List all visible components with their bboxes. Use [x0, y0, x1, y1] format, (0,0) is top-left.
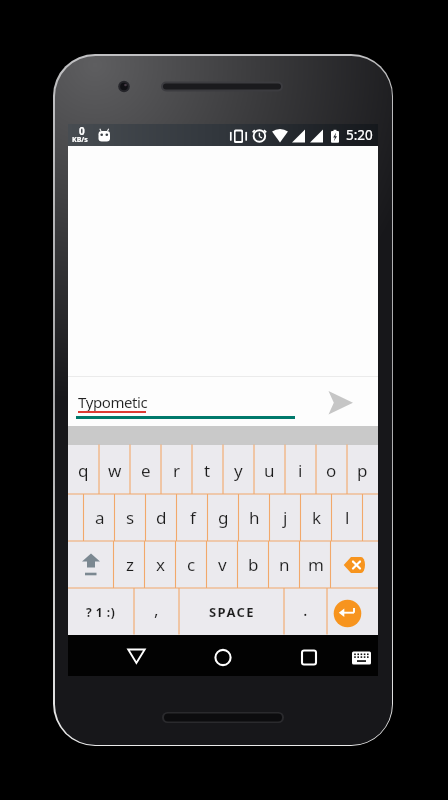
button[interactable]: p: [347, 445, 378, 495]
button[interactable]: r: [161, 445, 192, 495]
staticText: c: [187, 553, 196, 576]
button[interactable]: y: [223, 445, 254, 495]
button[interactable]: b: [238, 541, 269, 588]
staticText: 0: [79, 124, 85, 136]
button[interactable]: [293, 642, 325, 673]
button[interactable]: g: [208, 494, 239, 541]
staticText: ? 1 :): [86, 604, 116, 620]
staticText: o: [326, 459, 337, 482]
button[interactable]: u: [254, 445, 285, 495]
button[interactable]: i: [285, 445, 316, 495]
button[interactable]: n: [269, 541, 300, 588]
button[interactable]: a: [84, 494, 115, 541]
staticText: SPACE: [209, 603, 255, 621]
button[interactable]: [331, 541, 379, 588]
button[interactable]: [347, 642, 376, 673]
staticText: e: [141, 459, 151, 482]
button[interactable]: d: [146, 494, 177, 541]
staticText: v: [218, 553, 227, 576]
staticText: b: [248, 553, 259, 576]
button[interactable]: [124, 642, 156, 673]
button[interactable]: ? 1 :): [68, 588, 134, 635]
staticText: g: [218, 506, 229, 529]
staticText: y: [234, 459, 243, 482]
button[interactable]: .: [284, 588, 327, 630]
staticText: KB/s: [72, 135, 88, 145]
button[interactable]: t: [192, 445, 223, 495]
staticText: m: [308, 553, 324, 576]
button[interactable]: ,: [134, 588, 179, 630]
button[interactable]: m: [300, 541, 331, 588]
button[interactable]: s: [115, 494, 146, 541]
staticText: z: [126, 553, 134, 576]
staticText: t: [204, 459, 211, 482]
button[interactable]: o: [316, 445, 347, 495]
button[interactable]: k: [301, 494, 332, 541]
button[interactable]: f: [177, 494, 208, 541]
button[interactable]: [322, 387, 362, 419]
staticText: Typometic: [78, 392, 148, 411]
button[interactable]: w: [99, 445, 130, 495]
staticText: d: [156, 506, 167, 529]
staticText: k: [312, 506, 322, 529]
button[interactable]: c: [176, 541, 207, 588]
button[interactable]: z: [114, 541, 145, 588]
button[interactable]: [327, 588, 378, 635]
staticText: 5:20: [346, 126, 373, 144]
button[interactable]: x: [145, 541, 176, 588]
staticText: i: [298, 459, 303, 482]
staticText: h: [249, 506, 260, 529]
staticText: p: [357, 459, 368, 482]
button[interactable]: Typometic: [78, 392, 238, 411]
button[interactable]: SPACE: [179, 588, 284, 635]
staticText: l: [345, 506, 350, 529]
staticText: f: [190, 506, 196, 529]
staticText: .: [303, 598, 308, 621]
staticText: x: [156, 553, 165, 576]
button[interactable]: [207, 642, 239, 673]
staticText: ,: [154, 598, 159, 621]
button[interactable]: v: [207, 541, 238, 588]
staticText: s: [126, 506, 135, 529]
button[interactable]: e: [130, 445, 161, 495]
staticText: a: [95, 506, 105, 529]
staticText: n: [279, 553, 290, 576]
button[interactable]: [68, 541, 114, 588]
staticText: u: [264, 459, 275, 482]
button[interactable]: q: [68, 445, 99, 495]
button[interactable]: h: [239, 494, 270, 541]
staticText: w: [108, 459, 122, 482]
staticText: j: [283, 506, 288, 529]
staticText: q: [78, 459, 89, 482]
button[interactable]: l: [332, 494, 363, 541]
button[interactable]: j: [270, 494, 301, 541]
staticText: r: [173, 459, 181, 482]
